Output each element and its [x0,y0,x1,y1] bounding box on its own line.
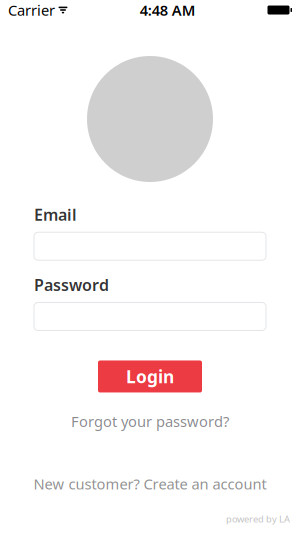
staticText: Forgot your password? [71,411,229,431]
button[interactable]: Forgot your password? [65,408,235,434]
staticText: Password [34,274,109,295]
staticText: 4:48 AM [140,0,196,20]
staticText: Email [34,204,77,225]
button[interactable]: New customer? Create an account [27,471,272,497]
staticText: Login [126,365,174,388]
staticText: Carrier [8,0,55,20]
staticText: New customer? Create an account [33,474,266,494]
staticText: powered by LA [226,513,290,525]
button[interactable]: Login [98,360,202,392]
